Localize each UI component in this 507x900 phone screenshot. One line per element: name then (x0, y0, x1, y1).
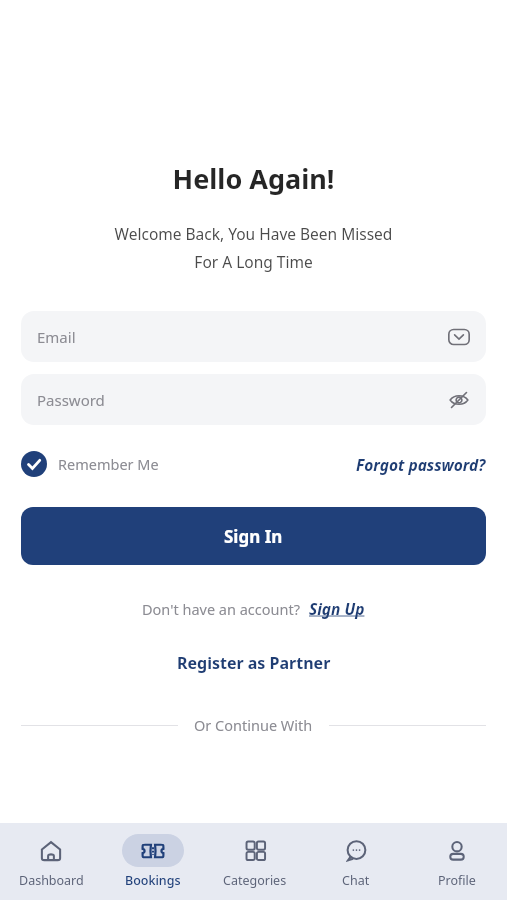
staticText: Hello Again! (0, 160, 507, 197)
button[interactable]: Forgot password? (356, 450, 486, 479)
staticText: Sign Up (309, 598, 365, 619)
staticText: Sign In (224, 525, 283, 548)
staticText: Categories (223, 872, 287, 889)
staticText: Register as Partner (177, 652, 331, 674)
other: Email (448, 326, 470, 348)
staticText: Forgot password? (356, 454, 486, 475)
staticText: Email (37, 327, 76, 347)
button[interactable]: Remember Me (21, 447, 159, 481)
other: Profile (445, 839, 469, 863)
staticText: Or Continue With (194, 715, 313, 735)
staticText: Dashboard (19, 872, 84, 889)
button[interactable]: Sign Up (309, 598, 365, 619)
button[interactable]: Chat (305, 823, 406, 900)
staticText: Welcome Back, You Have Been Missed For A… (24, 223, 483, 273)
staticText: Don't have an account? (142, 599, 300, 619)
other: Dashboard (39, 839, 63, 863)
other: Categories (244, 839, 267, 862)
staticText: Profile (438, 872, 476, 889)
button[interactable]: Categories (204, 823, 305, 900)
other: Chat (344, 839, 368, 863)
staticText: Bookings (125, 872, 181, 889)
button[interactable]: Email (21, 311, 486, 362)
other: Show password (448, 389, 470, 411)
button[interactable]: Register as Partner (169, 649, 339, 677)
button[interactable]: Sign In (21, 507, 486, 565)
button[interactable]: Password (21, 374, 486, 425)
staticText: Remember Me (58, 454, 159, 474)
button[interactable]: Profile (406, 823, 507, 900)
staticText: Password (37, 390, 105, 410)
staticText: Chat (342, 872, 370, 889)
button[interactable]: Bookings (102, 823, 204, 900)
other: Bookings (140, 838, 166, 864)
button[interactable]: Dashboard (0, 823, 102, 900)
